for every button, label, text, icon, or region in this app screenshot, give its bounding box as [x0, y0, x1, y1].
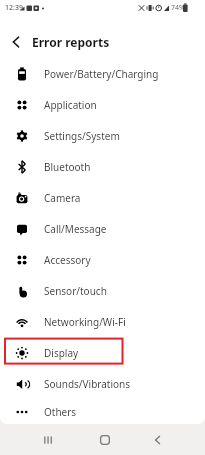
button[interactable]: Accessory — [0, 244, 205, 275]
button[interactable] — [0, 25, 30, 58]
staticText: Accessory — [44, 253, 91, 267]
button[interactable]: Application — [0, 89, 205, 120]
button[interactable]: Sounds/Vibrations — [0, 368, 205, 399]
staticText: Bluetooth — [44, 160, 91, 174]
button[interactable]: Call/Message — [0, 213, 205, 244]
button[interactable]: Camera — [0, 182, 205, 213]
staticText: Networking/Wi-Fi — [44, 315, 126, 329]
button[interactable]: Display — [0, 337, 205, 368]
staticText: Application — [44, 98, 97, 112]
button[interactable] — [137, 424, 205, 455]
button[interactable]: Settings/System — [0, 120, 205, 151]
button[interactable]: Power/Battery/Charging — [0, 58, 205, 89]
button[interactable]: Sensor/touch — [0, 275, 205, 306]
staticText: Settings/System — [44, 129, 120, 143]
staticText: Others — [44, 405, 77, 419]
staticText: Error reports — [32, 34, 110, 50]
staticText: Display — [44, 346, 79, 360]
staticText: Power/Battery/Charging — [44, 67, 159, 81]
button[interactable]: Networking/Wi-Fi — [0, 306, 205, 337]
button[interactable] — [0, 424, 69, 455]
staticText: Sensor/touch — [44, 284, 107, 298]
staticText: Call/Message — [44, 222, 107, 236]
staticText: Sounds/Vibrations — [44, 377, 131, 391]
button[interactable]: Bluetooth — [0, 151, 205, 182]
button[interactable]: Others — [0, 399, 205, 424]
button[interactable] — [69, 424, 137, 455]
staticText: 74% — [171, 3, 185, 13]
staticText: 12:39 — [5, 3, 23, 13]
staticText: Camera — [44, 191, 81, 205]
